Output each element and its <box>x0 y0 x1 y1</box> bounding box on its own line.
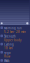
staticText: Flow <box>4 55 10 58</box>
button[interactable]: Yoga <box>0 51 30 58</box>
staticText: Morning run <box>4 26 22 30</box>
staticText: 18 km <box>4 46 12 50</box>
staticText: 5.2 km · 28 min <box>4 30 26 34</box>
button[interactable]: Walk <box>0 59 30 63</box>
button[interactable]: Morning run <box>0 26 30 34</box>
staticText: Walk <box>4 59 9 63</box>
button[interactable]: Strength <box>0 35 30 42</box>
staticText: Cycling <box>4 43 14 46</box>
staticText: Yoga <box>4 51 10 54</box>
staticText: Strength <box>4 35 16 38</box>
staticText: Upper body <box>4 38 21 42</box>
button[interactable]: Cycling <box>0 43 30 50</box>
